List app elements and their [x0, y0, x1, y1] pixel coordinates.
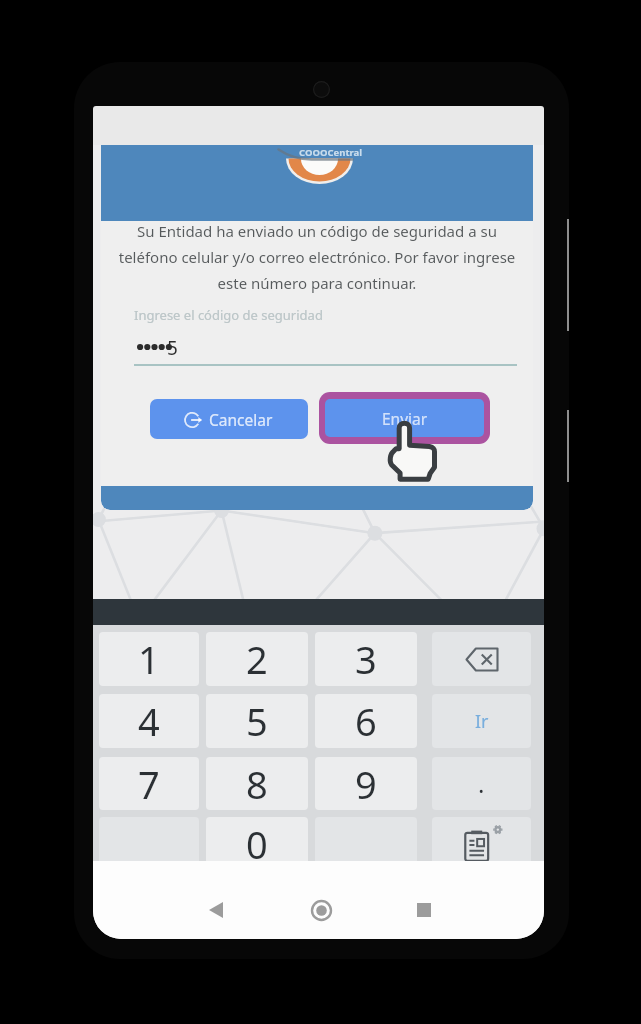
- button[interactable]: Backspace: [432, 632, 531, 686]
- button[interactable]: 2: [206, 632, 308, 686]
- staticText: 8: [246, 758, 268, 810]
- staticText: Su Entidad ha enviado un código de segur…: [110, 221, 524, 294]
- button[interactable]: Ir: [432, 694, 531, 748]
- staticText: 3: [355, 633, 377, 685]
- other: Backspace: [465, 647, 499, 672]
- button[interactable]: Recent apps: [403, 889, 445, 931]
- staticText: Ingrese el código de seguridad: [134, 306, 323, 324]
- button[interactable]: Cancelar: [150, 399, 308, 439]
- button[interactable]: Back: [195, 889, 237, 931]
- button[interactable]: Clipboard: [432, 817, 531, 871]
- staticText: 9: [355, 758, 377, 810]
- button[interactable]: 0: [206, 817, 308, 871]
- staticText: Cancelar: [209, 409, 273, 430]
- staticText: .: [478, 767, 485, 800]
- staticText: 5: [167, 335, 178, 361]
- button[interactable]: 9: [315, 757, 417, 810]
- staticText: 6: [355, 695, 377, 747]
- staticText: 2: [246, 633, 268, 685]
- button[interactable]: 3: [315, 632, 417, 686]
- staticText: 7: [138, 758, 160, 810]
- button[interactable]: .: [432, 757, 531, 810]
- button[interactable]: 6: [315, 694, 417, 748]
- button[interactable]: 5: [206, 694, 308, 748]
- staticText: COOOCentral: [299, 146, 363, 159]
- button[interactable]: [315, 817, 417, 871]
- staticText: 1: [138, 633, 160, 685]
- staticText: 4: [138, 695, 160, 747]
- button[interactable]: Home: [300, 889, 342, 931]
- other: Clipboard: [460, 824, 504, 864]
- button[interactable]: 8: [206, 757, 308, 810]
- button[interactable]: 4: [99, 694, 199, 748]
- staticText: Ir: [475, 709, 489, 734]
- staticText: 0: [246, 818, 268, 870]
- staticText: Enviar: [382, 408, 428, 429]
- button[interactable]: 7: [99, 757, 199, 810]
- button[interactable]: [99, 817, 199, 871]
- staticText: 5: [246, 695, 268, 747]
- button[interactable]: Enviar: [325, 399, 484, 437]
- button[interactable]: 1: [99, 632, 199, 686]
